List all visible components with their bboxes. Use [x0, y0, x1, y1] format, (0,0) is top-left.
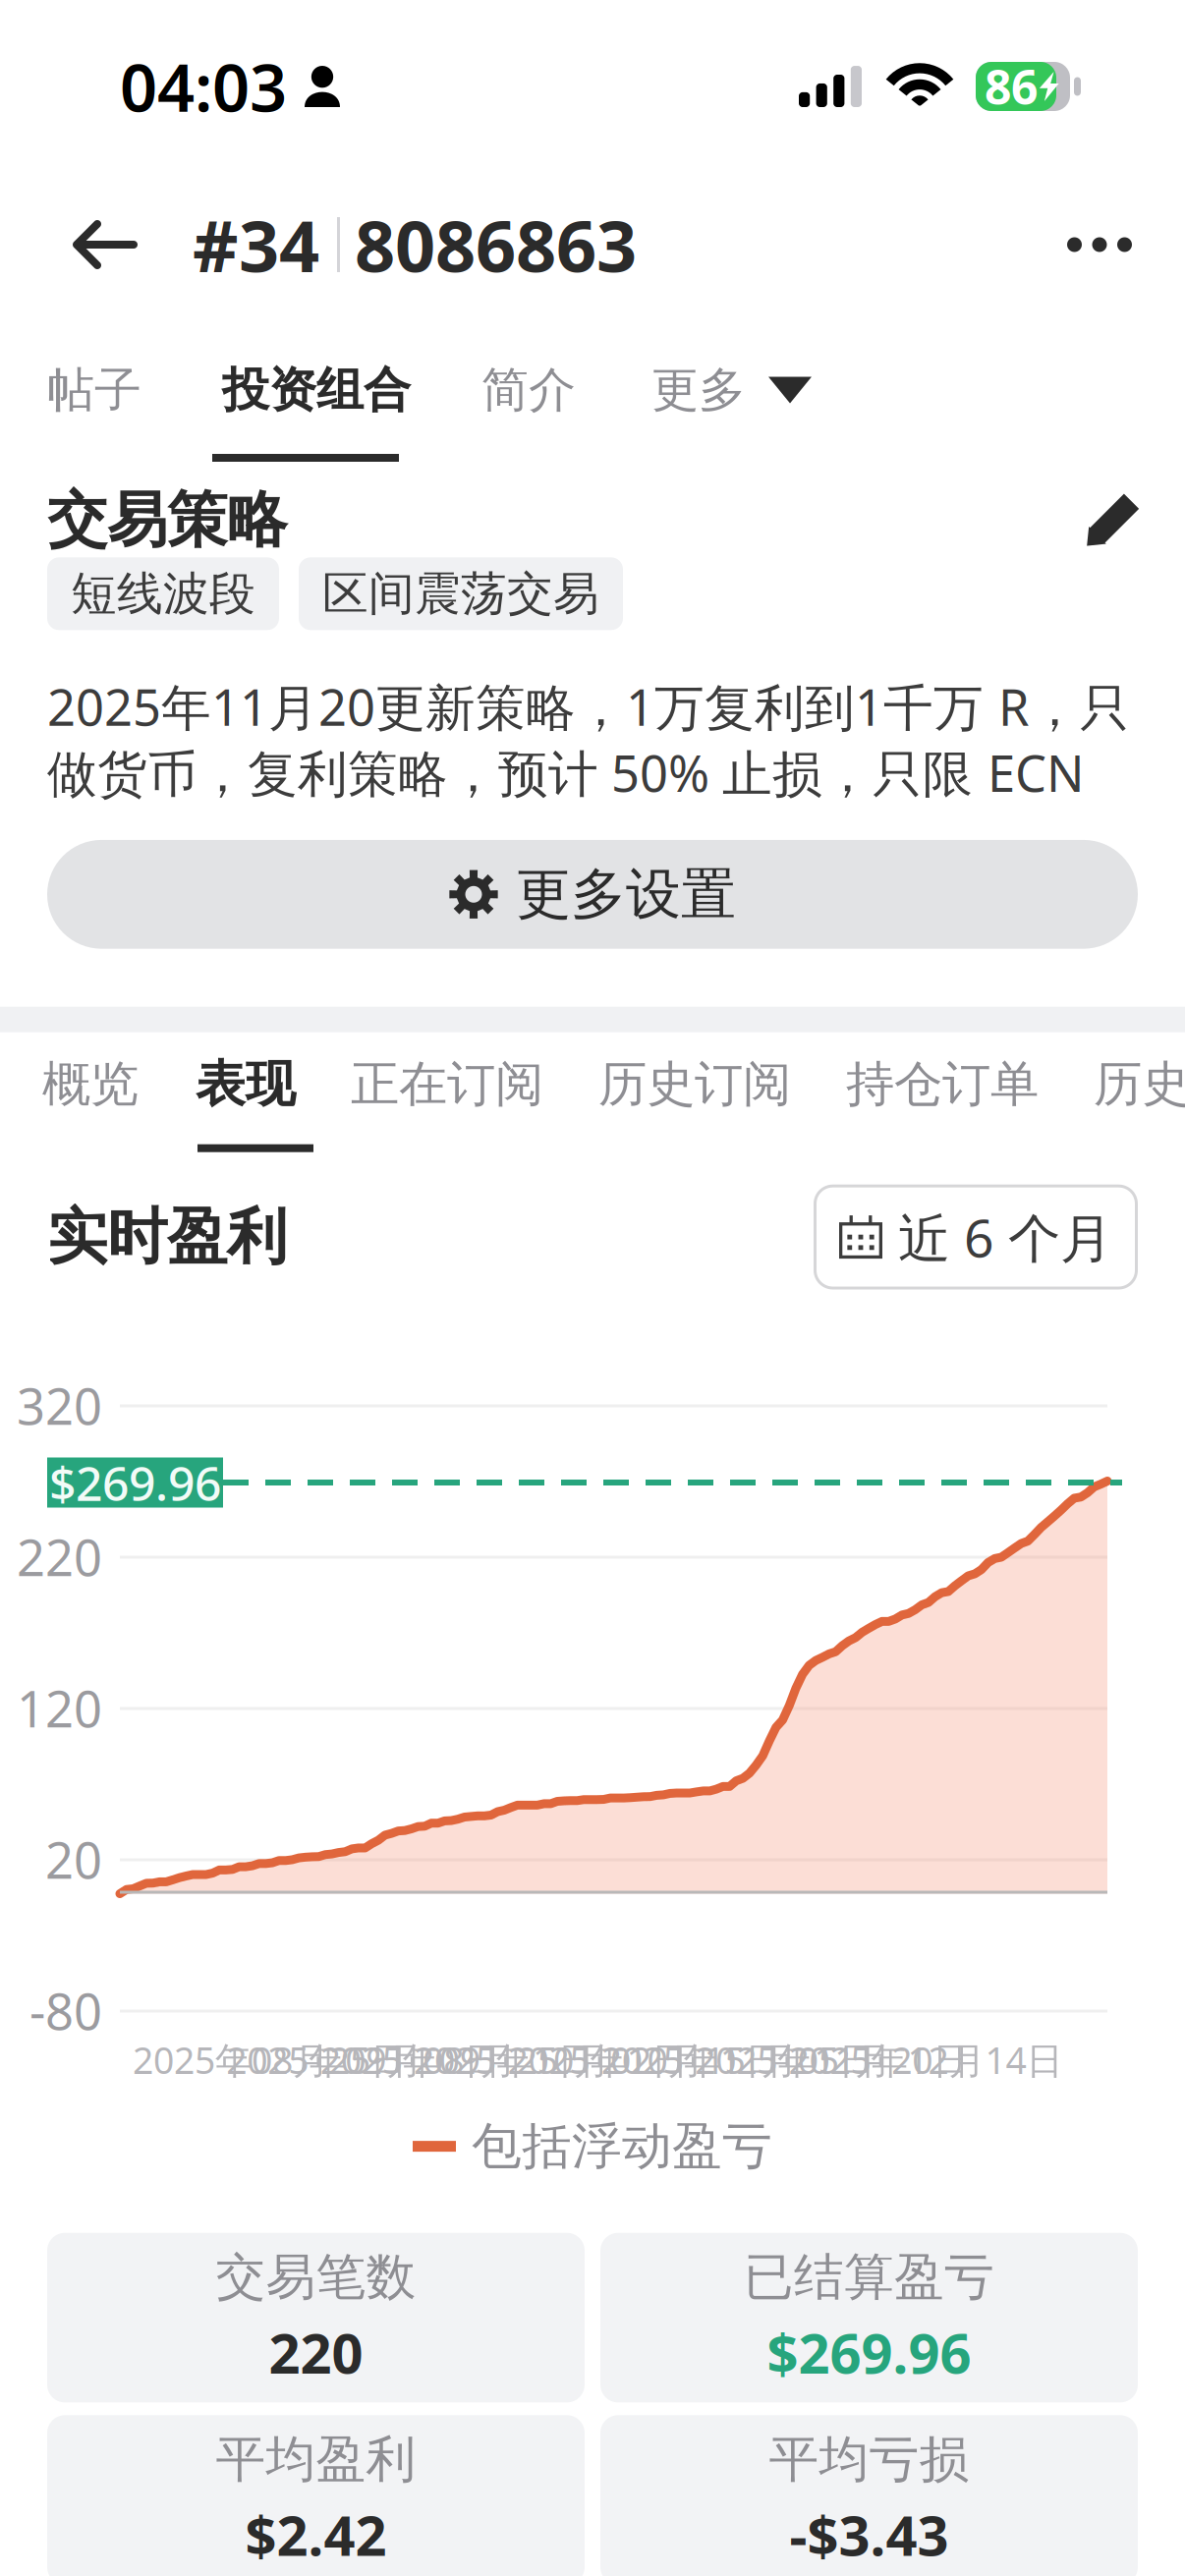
staticText: 交易笔数	[216, 2247, 416, 2308]
staticText: 表现	[196, 1054, 296, 1115]
staticText: 2025年11月20更新策略，1万复利到1千万 R，只做货币，复利策略，预计 5…	[47, 673, 1130, 806]
button[interactable]: 简介	[481, 361, 576, 419]
staticText: 投资组合	[222, 361, 411, 419]
staticText: 2025年09月25日	[320, 2035, 594, 2084]
staticText: 2025年10月02日	[414, 2035, 688, 2084]
staticText: 历史订阅	[598, 1055, 791, 1114]
button[interactable]: 帖子	[47, 361, 141, 419]
staticText: 220	[17, 1524, 102, 1590]
staticText: 短线波段	[71, 566, 255, 622]
button[interactable]: 表现	[196, 1054, 296, 1115]
staticText: 220	[269, 2316, 363, 2389]
staticText: #34	[193, 198, 319, 292]
staticText: 120	[17, 1675, 102, 1741]
staticText: 已结算盈亏	[744, 2247, 994, 2308]
button[interactable]: 正在订阅	[351, 1055, 543, 1114]
staticText: 更多设置	[516, 861, 736, 928]
staticText: 区间震荡交易	[322, 566, 599, 622]
staticText: 包括浮动盈亏	[472, 2116, 772, 2177]
staticText: 历史	[1094, 1055, 1185, 1114]
button[interactable]: 更多	[651, 361, 812, 419]
staticText: 2025年11月05日	[601, 2035, 875, 2084]
staticText: $269.96	[767, 2316, 971, 2389]
staticText: 帖子	[47, 361, 141, 419]
button[interactable]: 投资组合	[222, 361, 411, 419]
staticText: 86	[985, 55, 1038, 118]
staticText: $269.96	[49, 1451, 221, 1514]
staticText: 正在订阅	[351, 1055, 543, 1114]
staticText: 320	[17, 1372, 102, 1439]
staticText: 2025年08月25日	[133, 2035, 407, 2084]
staticText: 交易策略	[47, 483, 287, 557]
button[interactable]: 近 6 个月	[814, 1185, 1138, 1289]
staticText: 更多	[651, 361, 746, 419]
staticText: 2025年11月20日	[695, 2035, 969, 2084]
staticText: 2025年10月15日	[507, 2035, 782, 2084]
staticText: 04:03	[120, 43, 287, 130]
button[interactable]: 持仓订单	[846, 1055, 1039, 1114]
staticText: $2.42	[245, 2498, 387, 2571]
staticText: -$3.43	[790, 2498, 949, 2571]
staticText: 实时盈利	[47, 1200, 287, 1274]
staticText: 近 6 个月	[898, 1202, 1112, 1272]
staticText: 平均盈利	[216, 2429, 416, 2490]
staticText: 20	[45, 1826, 102, 1892]
button[interactable]: More options	[1044, 196, 1156, 293]
staticText: 持仓订单	[846, 1055, 1039, 1114]
staticText: 概览	[42, 1055, 139, 1114]
button[interactable]: 更多设置	[47, 840, 1138, 949]
staticText: 2025年12月14日	[789, 2035, 1063, 2084]
button[interactable]: 历史	[1094, 1055, 1185, 1114]
staticText: 2025年09月08日	[226, 2035, 501, 2084]
button[interactable]: Back	[55, 191, 155, 299]
button[interactable]: Edit strategy	[1085, 494, 1138, 547]
button[interactable]: 概览	[42, 1055, 139, 1114]
button[interactable]: 历史订阅	[598, 1055, 791, 1114]
staticText: 8086863	[355, 198, 637, 292]
staticText: 平均亏损	[769, 2429, 969, 2490]
staticText: 简介	[481, 361, 576, 419]
staticText: -80	[29, 1978, 102, 2044]
